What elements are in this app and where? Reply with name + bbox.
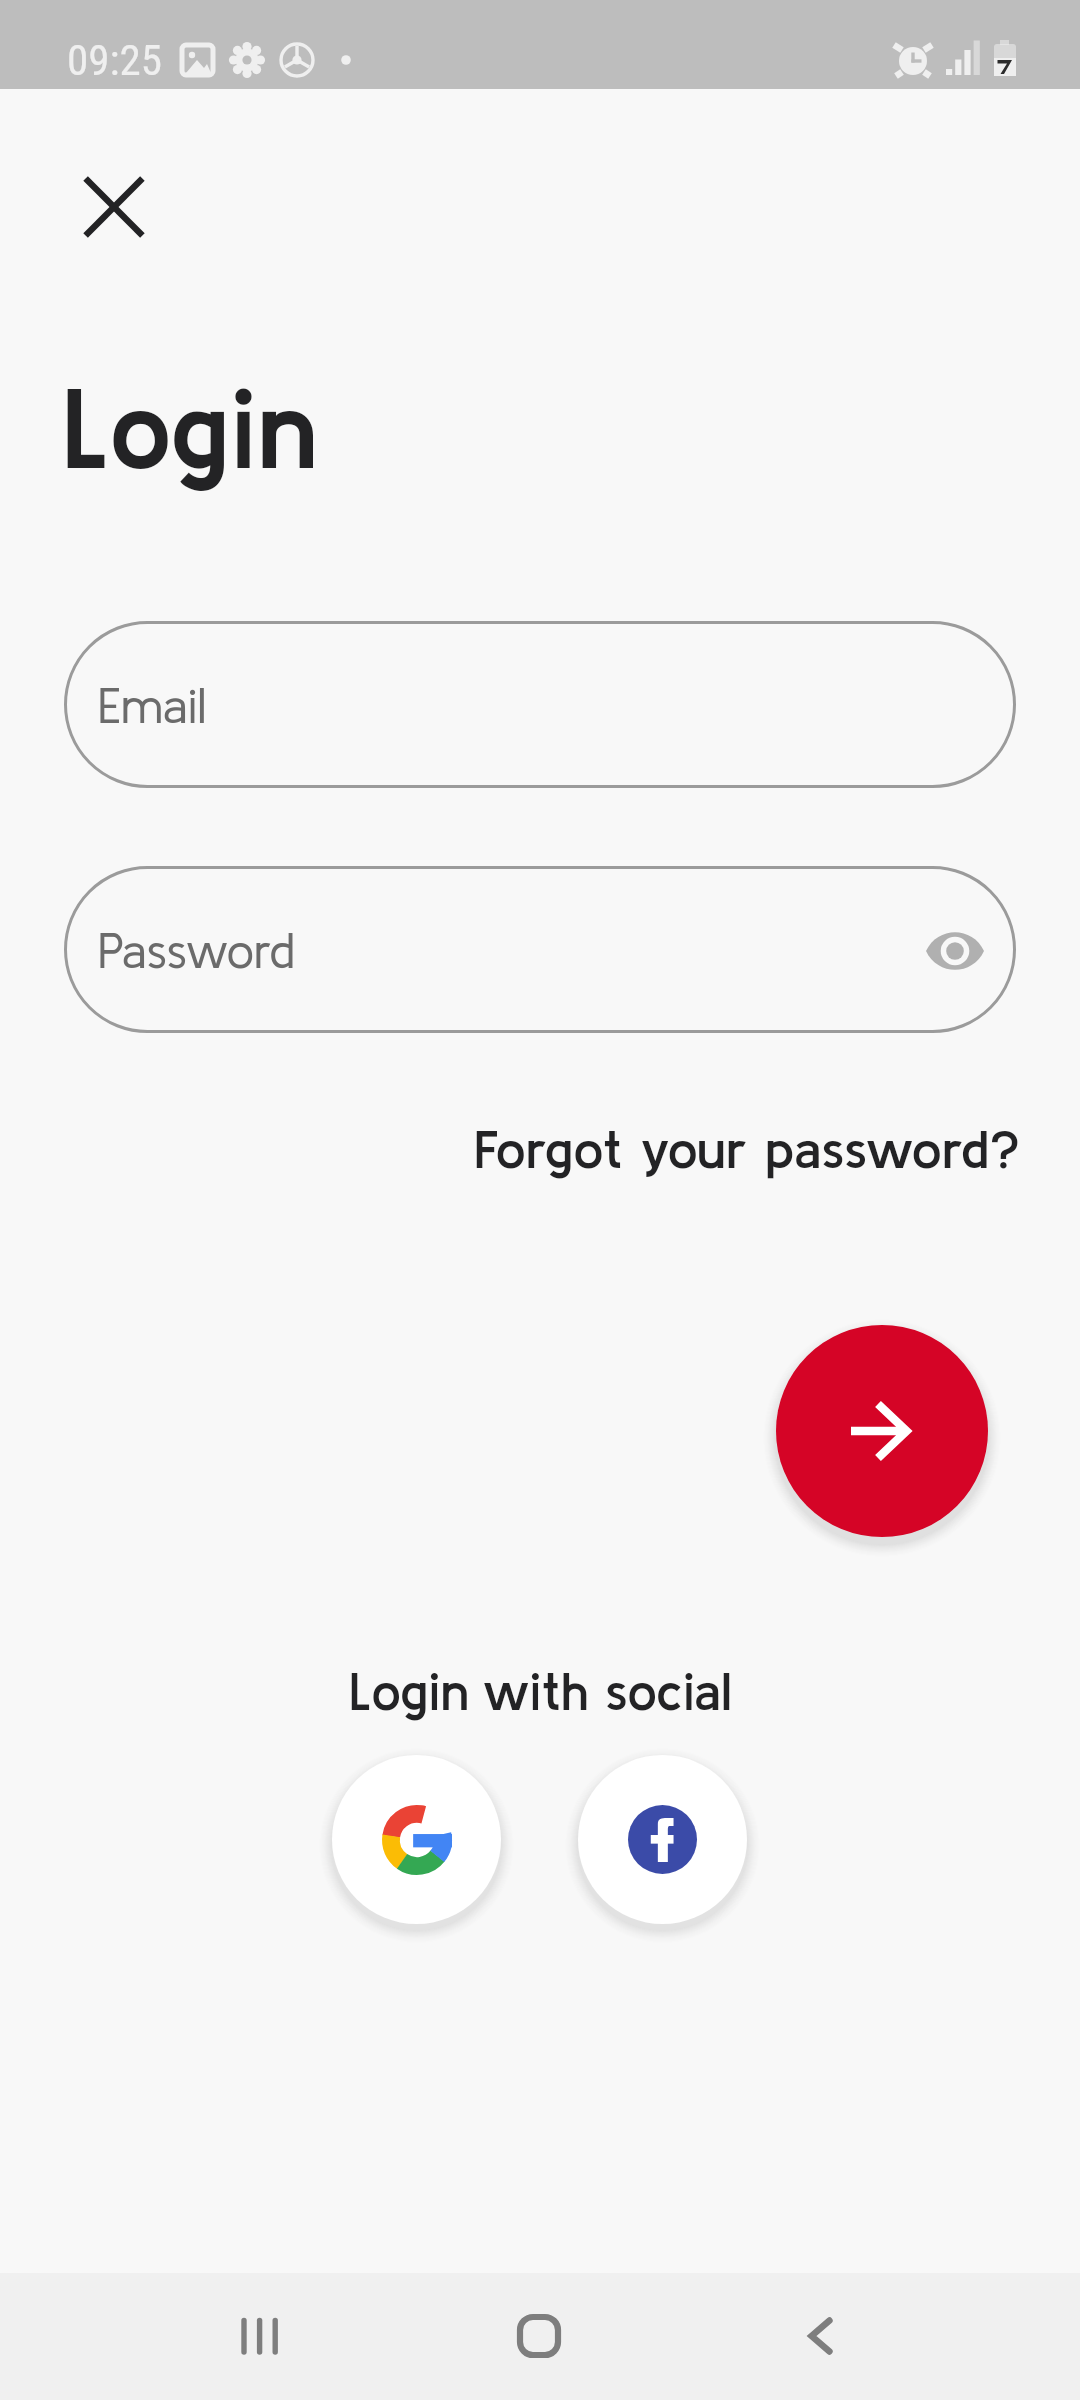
staticText: Login <box>349 1661 469 1721</box>
button[interactable]: Submit <box>776 1325 988 1537</box>
button[interactable]: Email <box>64 621 1016 788</box>
button[interactable]: Back <box>744 2285 904 2389</box>
staticText: your <box>640 1118 748 1179</box>
button[interactable]: Close <box>54 147 174 267</box>
button[interactable]: Home <box>460 2285 620 2389</box>
staticText: Forgot <box>474 1118 623 1179</box>
button[interactable]: Forgot <box>434 1100 1021 1196</box>
button[interactable]: Login with Facebook <box>578 1755 747 1924</box>
staticText: Email <box>98 677 207 733</box>
staticText: social <box>605 1661 732 1721</box>
button[interactable]: Recent apps <box>180 2285 340 2389</box>
staticText: Password <box>98 922 296 978</box>
button[interactable]: Show password <box>895 891 1015 1011</box>
button[interactable]: Login with Google <box>332 1755 501 1924</box>
staticText: Login <box>62 364 318 491</box>
staticText: 09:25 <box>67 35 162 85</box>
button[interactable]: Password <box>64 866 1016 1033</box>
staticText: password? <box>765 1118 1021 1179</box>
staticText: with <box>482 1661 589 1721</box>
